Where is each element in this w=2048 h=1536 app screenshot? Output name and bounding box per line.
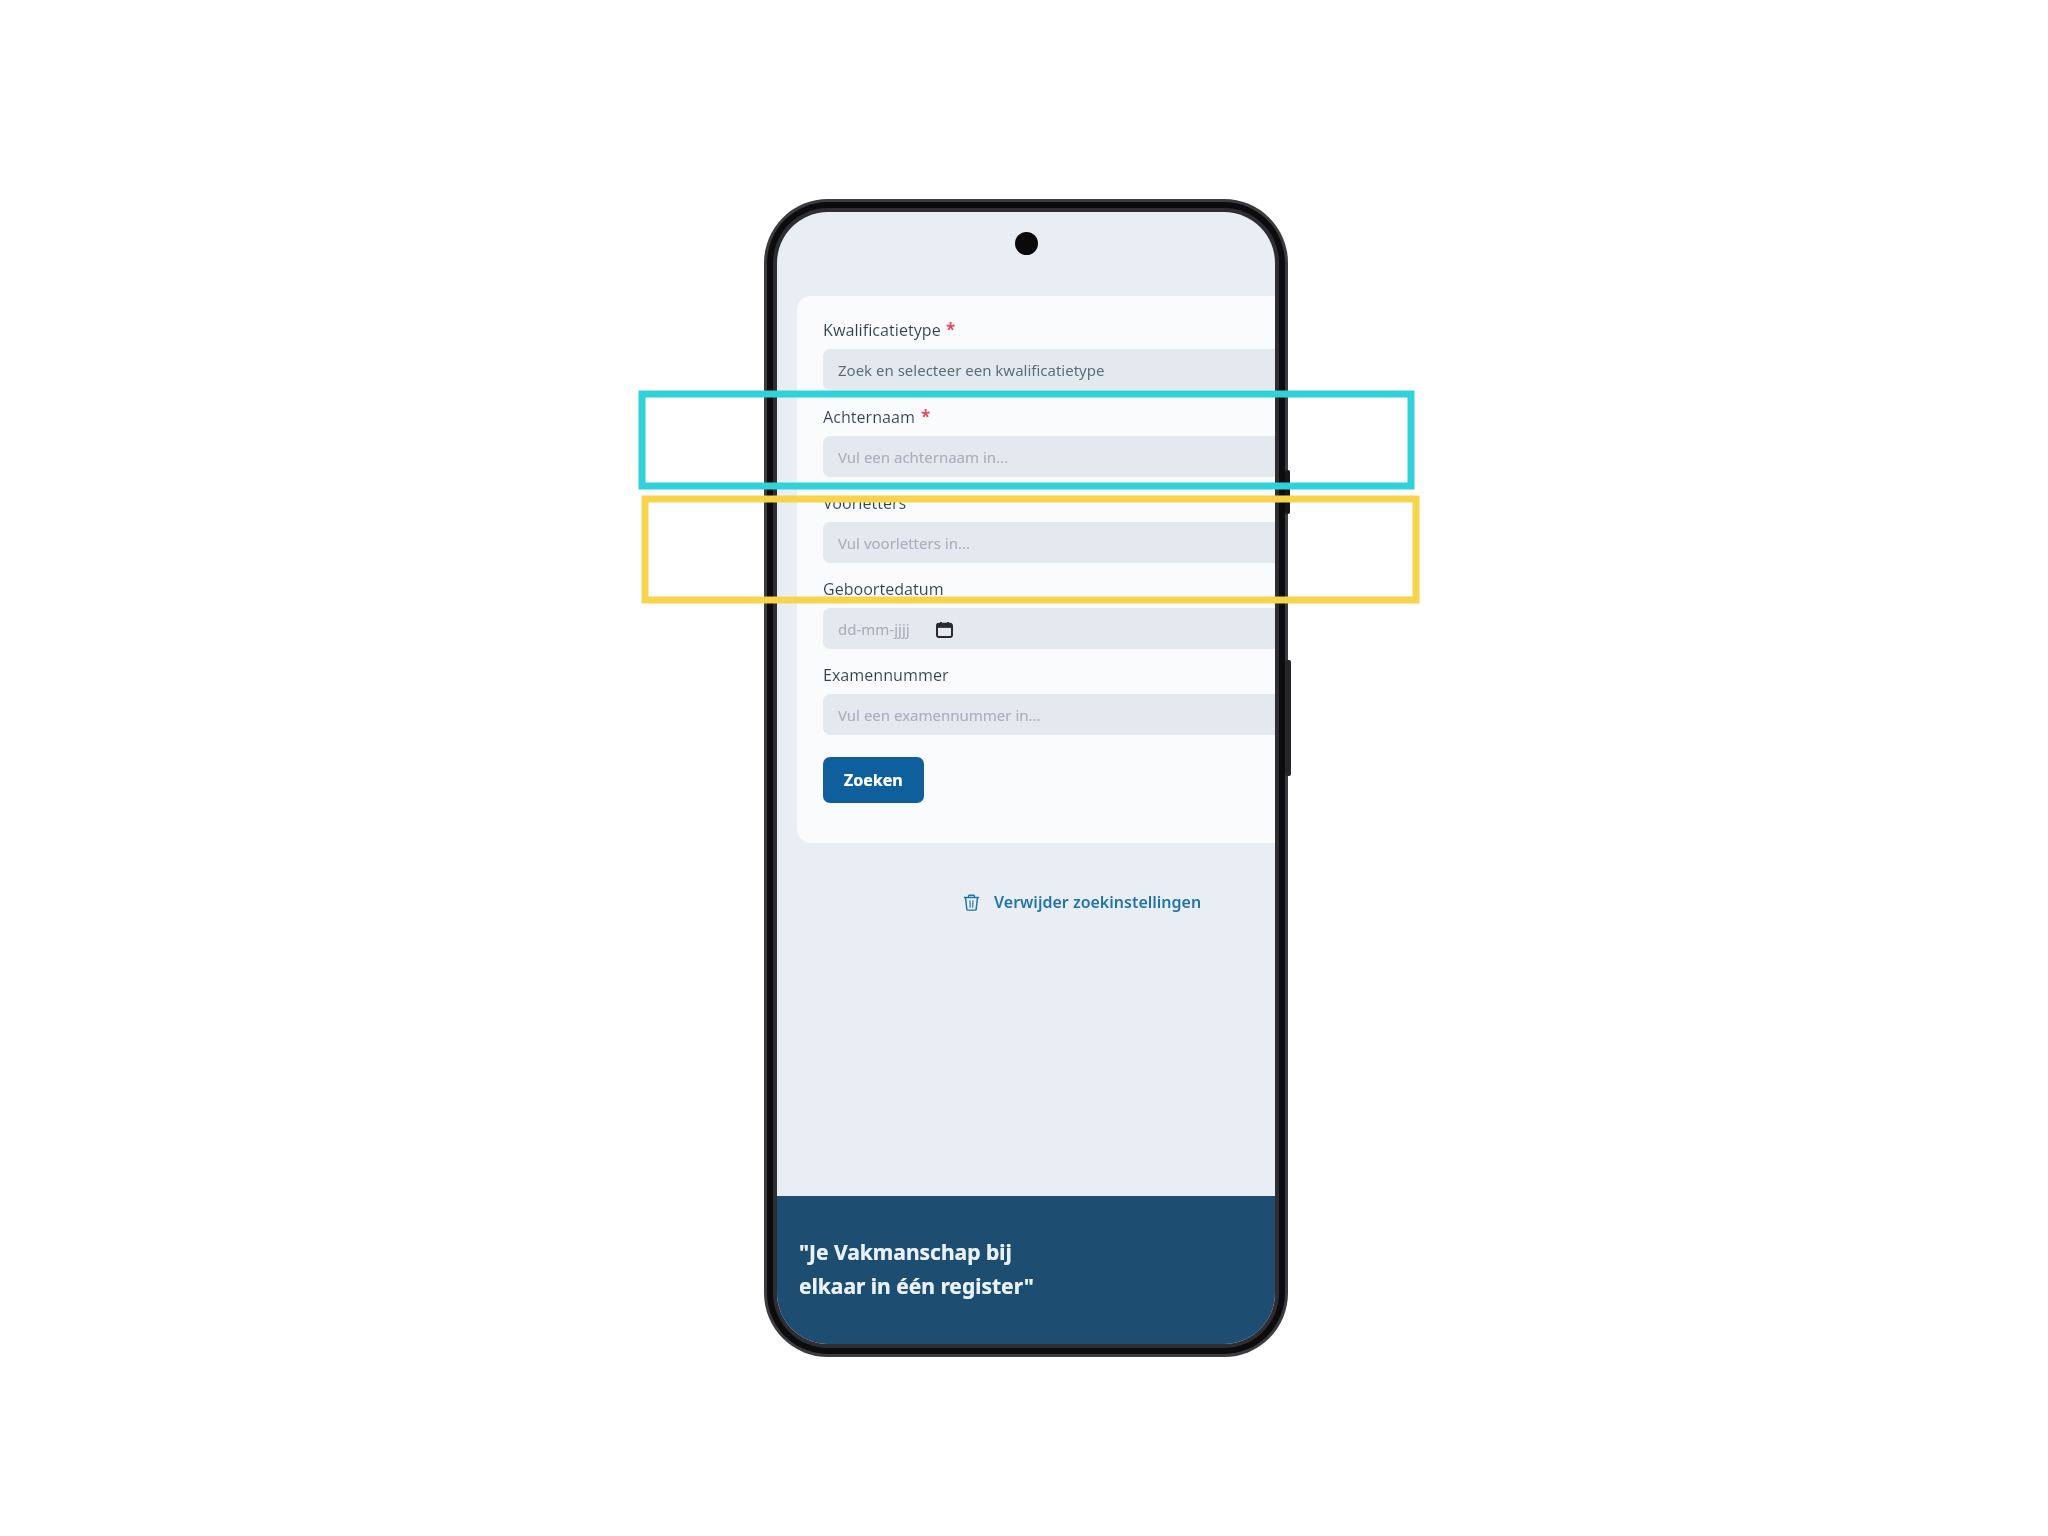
- button[interactable]: Vul een achternaam in...: [823, 436, 1275, 477]
- staticText: Vul een achternaam in...: [838, 447, 1009, 467]
- staticText: Verwijder zoekinstellingen: [994, 891, 1202, 913]
- staticText: elkaar in één register": [799, 1272, 1034, 1301]
- staticText: Vul een examennummer in...: [838, 705, 1041, 725]
- staticText: Achternaam: [823, 406, 916, 428]
- button[interactable]: Zoek en selecteer een kwalificatietype: [823, 349, 1275, 390]
- staticText: Vul voorletters in...: [838, 533, 970, 553]
- staticText: Voorletters: [823, 492, 907, 514]
- staticText: *: [921, 405, 931, 428]
- button[interactable]: Vul een examennummer in...: [823, 694, 1275, 735]
- button[interactable]: Zoeken: [823, 757, 924, 803]
- staticText: Zoek en selecteer een kwalificatietype: [838, 360, 1105, 380]
- staticText: *: [946, 318, 956, 341]
- staticText: Zoeken: [844, 769, 903, 791]
- button[interactable]: Open datumkiezer: [934, 619, 954, 639]
- other: Verwijder zoekinstellingen: [961, 892, 981, 912]
- staticText: "Je Vakmanschap bij: [799, 1238, 1012, 1267]
- staticText: Kwalificatietype: [823, 319, 941, 341]
- button[interactable]: Verwijder zoekinstellingen: [961, 891, 1275, 913]
- staticText: dd-mm-jjjj: [838, 619, 910, 639]
- staticText: Geboortedatum: [823, 578, 944, 600]
- button[interactable]: dd-mm-jjjj: [823, 608, 1275, 649]
- button[interactable]: Vul voorletters in...: [823, 522, 1275, 563]
- staticText: Examennummer: [823, 664, 949, 686]
